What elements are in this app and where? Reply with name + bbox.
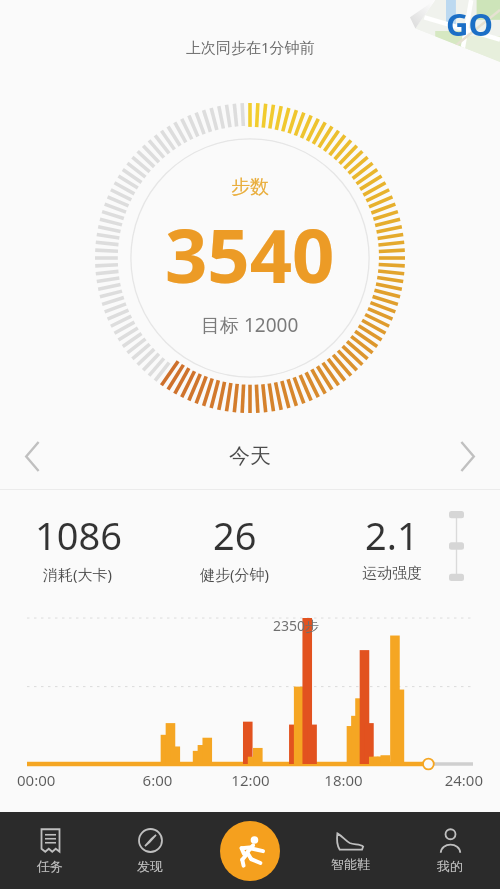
staticText: 今天 bbox=[229, 443, 271, 469]
button[interactable]: 智能鞋 bbox=[300, 812, 400, 889]
staticText: 1086 bbox=[35, 509, 122, 561]
button[interactable]: 今天 bbox=[203, 435, 297, 477]
staticText: 运动强度 bbox=[362, 564, 422, 583]
staticText: 消耗(大卡) bbox=[43, 564, 113, 584]
staticText: 3540 bbox=[165, 204, 335, 305]
staticText: 步数 bbox=[231, 175, 269, 199]
button[interactable]: Next day bbox=[434, 423, 500, 489]
staticText: 18:00 bbox=[297, 770, 390, 790]
staticText: 00:00 bbox=[17, 770, 111, 790]
staticText: 任务 bbox=[37, 858, 63, 874]
button[interactable]: 26 bbox=[156, 490, 313, 602]
button[interactable]: 1086 bbox=[0, 490, 156, 602]
staticText: GO bbox=[446, 3, 493, 45]
staticText: 26 bbox=[213, 509, 257, 561]
button[interactable]: Previous day bbox=[0, 423, 66, 489]
button[interactable]: Start run bbox=[220, 821, 280, 881]
staticText: 2350步 bbox=[273, 616, 320, 635]
button[interactable]: 任务 bbox=[0, 812, 100, 889]
staticText: 6:00 bbox=[111, 770, 204, 790]
staticText: 发现 bbox=[137, 858, 163, 874]
staticText: 2.1 bbox=[365, 509, 419, 561]
staticText: 目标 12000 bbox=[201, 312, 299, 338]
button[interactable]: 我的 bbox=[400, 812, 500, 889]
staticText: 健步(分钟) bbox=[200, 564, 270, 584]
staticText: 我的 bbox=[437, 858, 463, 874]
staticText: 智能鞋 bbox=[331, 856, 370, 872]
button[interactable]: 发现 bbox=[100, 812, 200, 889]
staticText: 上次同步在1分钟前 bbox=[186, 37, 315, 57]
staticText: 12:00 bbox=[204, 770, 297, 790]
staticText: 24:00 bbox=[390, 770, 483, 790]
button[interactable]: 2.1 bbox=[313, 490, 470, 602]
button[interactable]: Open map bbox=[410, 0, 500, 62]
